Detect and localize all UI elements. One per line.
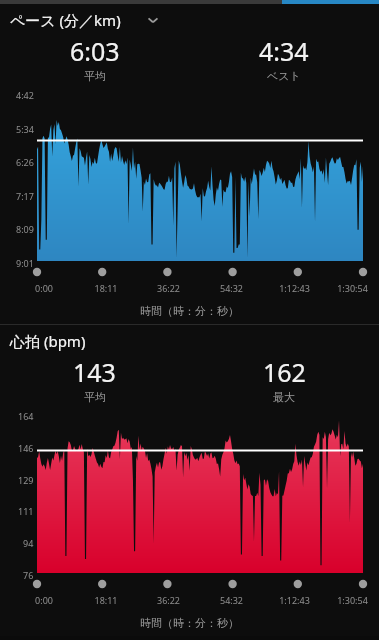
staticText: 6:26 [16, 156, 34, 168]
staticText: 129 [18, 474, 34, 486]
staticText: 6:03 [70, 34, 120, 68]
staticText: 1:12:43 [263, 282, 326, 294]
staticText: 5:34 [16, 123, 34, 135]
staticText: ペース (分／km) [10, 10, 121, 30]
staticText: 時間（時：分：秒） [140, 616, 239, 630]
staticText: 9:01 [16, 257, 34, 269]
staticText: 111 [18, 505, 34, 517]
staticText: 54:32 [200, 282, 263, 294]
staticText: 36:22 [137, 282, 200, 294]
staticText: 時間（時：分：秒） [140, 304, 239, 318]
staticText: 4:34 [259, 34, 309, 68]
staticText: 94 [23, 537, 34, 549]
staticText: ベスト [267, 69, 301, 83]
staticText: 146 [18, 442, 34, 454]
staticText: 143 [73, 355, 116, 389]
staticText: 7:17 [16, 190, 34, 202]
staticText: 4:42 [16, 89, 34, 101]
staticText: 54:32 [200, 594, 263, 606]
staticText: 平均 [84, 390, 106, 404]
staticText: 最大 [273, 390, 295, 404]
staticText: 162 [263, 355, 306, 389]
button[interactable]: ペース (分／km) [0, 4, 379, 32]
staticText: 1:30:54 [326, 594, 379, 606]
staticText: 18:11 [75, 282, 137, 294]
staticText: 18:11 [75, 594, 137, 606]
button[interactable]: 心拍 (bpm) [0, 325, 379, 353]
staticText: 心拍 (bpm) [10, 331, 86, 351]
staticText: 164 [18, 410, 34, 422]
staticText: 1:30:54 [326, 282, 379, 294]
staticText: 1:12:43 [263, 594, 326, 606]
staticText: 36:22 [137, 594, 200, 606]
staticText: 0:00 [13, 282, 75, 294]
staticText: 平均 [84, 69, 106, 83]
button[interactable]: Select metric [143, 10, 163, 30]
staticText: 0:00 [13, 594, 75, 606]
staticText: 8:09 [16, 223, 34, 235]
staticText: 76 [23, 569, 34, 581]
